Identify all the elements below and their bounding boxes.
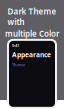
staticText: Dark Theme with (7, 6, 56, 27)
staticText: 9:41 (12, 43, 19, 48)
staticText: Appearance (12, 50, 51, 59)
staticText: Theme (12, 62, 25, 67)
staticText: multiple Color (5, 28, 59, 39)
